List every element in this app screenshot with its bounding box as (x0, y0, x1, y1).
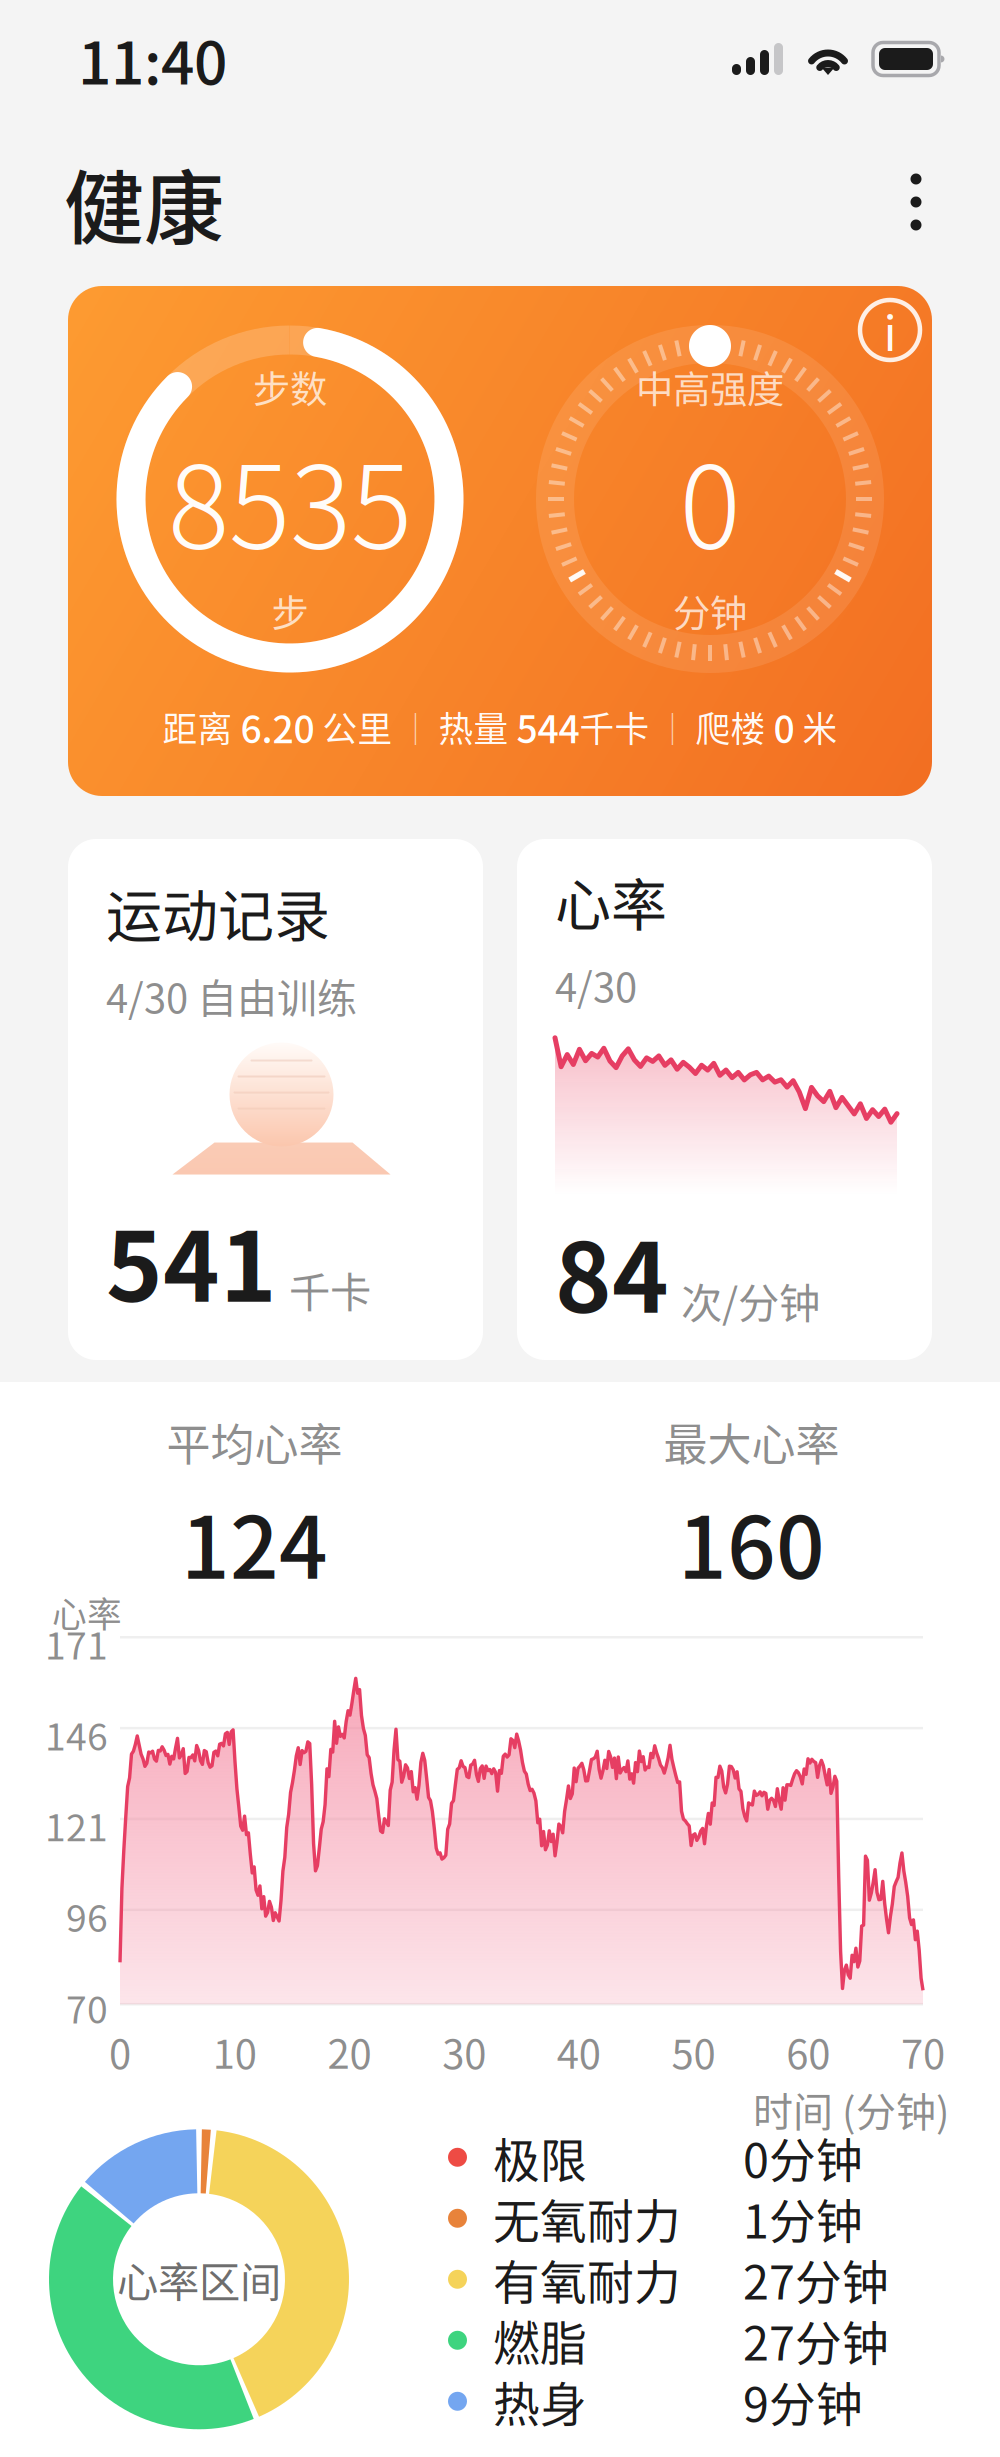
staticText: 60 (786, 2022, 830, 2080)
staticText: 千卡 (579, 702, 649, 752)
staticText: 0 (773, 700, 794, 754)
staticText: 0 (679, 416, 740, 582)
staticText: 中高强度 (636, 360, 784, 414)
staticText: 27分钟 (743, 2245, 889, 2313)
staticText: 146 (45, 1707, 108, 1761)
staticText: 544 (516, 700, 579, 754)
staticText: 4/30 自由训练 (106, 967, 357, 1024)
staticText: 124 (181, 1480, 328, 1603)
staticText: 11:40 (78, 16, 227, 101)
staticText: 平均心率 (166, 1410, 342, 1474)
staticText: 步 (271, 584, 308, 638)
staticText: i (883, 295, 896, 365)
staticText: 心率区间 (117, 2249, 281, 2309)
staticText: 1分钟 (743, 2184, 863, 2252)
staticText: 30 (442, 2022, 486, 2080)
staticText: 健康 (64, 144, 224, 260)
staticText: 最大心率 (663, 1410, 839, 1474)
staticText: 541 (106, 1190, 277, 1329)
staticText: 爬楼 (695, 702, 773, 752)
staticText: 121 (45, 1798, 108, 1852)
staticText: 运动记录 (106, 871, 330, 953)
staticText: 次/分钟 (681, 1271, 820, 1331)
button[interactable]: 心率 (517, 839, 932, 1360)
staticText: ｜ (649, 704, 695, 750)
staticText: 20 (327, 2022, 371, 2080)
staticText: 40 (557, 2022, 601, 2080)
staticText: 96 (66, 1889, 108, 1943)
staticText: 心率 (52, 1587, 122, 1637)
staticText: 27分钟 (743, 2306, 889, 2374)
staticText: 0分钟 (743, 2123, 863, 2191)
button[interactable]: More options (878, 159, 954, 245)
staticText: 千卡 (289, 1260, 371, 1320)
staticText: 50 (672, 2022, 716, 2080)
staticText: 公里 (314, 702, 392, 752)
staticText: 84 (555, 1201, 669, 1340)
staticText: 有氧耐力 (493, 2245, 681, 2313)
button[interactable]: Information (854, 294, 926, 366)
staticText: 极限 (493, 2123, 587, 2191)
staticText: 米 (794, 702, 837, 752)
staticText: 9分钟 (743, 2367, 863, 2435)
staticText: 4/30 (555, 956, 637, 1013)
staticText: 无氧耐力 (493, 2184, 681, 2252)
staticText: 0 (109, 2022, 131, 2080)
staticText: 171 (45, 1616, 108, 1670)
staticText: 10 (213, 2022, 257, 2080)
button[interactable]: 运动记录 (68, 839, 483, 1360)
staticText: ｜ (392, 704, 438, 750)
staticText: 热身 (493, 2367, 587, 2435)
staticText: 分钟 (673, 584, 747, 638)
staticText: 热量 (438, 702, 516, 752)
staticText: 心率 (555, 860, 667, 942)
staticText: 8535 (168, 416, 412, 582)
staticText: 距离 (162, 702, 240, 752)
staticText: 步数 (253, 360, 327, 414)
staticText: 70 (66, 1980, 108, 2034)
staticText: 70 (901, 2022, 945, 2080)
staticText: 6.20 (240, 700, 314, 754)
staticText: 160 (678, 1480, 825, 1603)
staticText: 燃脂 (493, 2306, 587, 2374)
staticText: 时间 (分钟) (753, 2080, 950, 2138)
